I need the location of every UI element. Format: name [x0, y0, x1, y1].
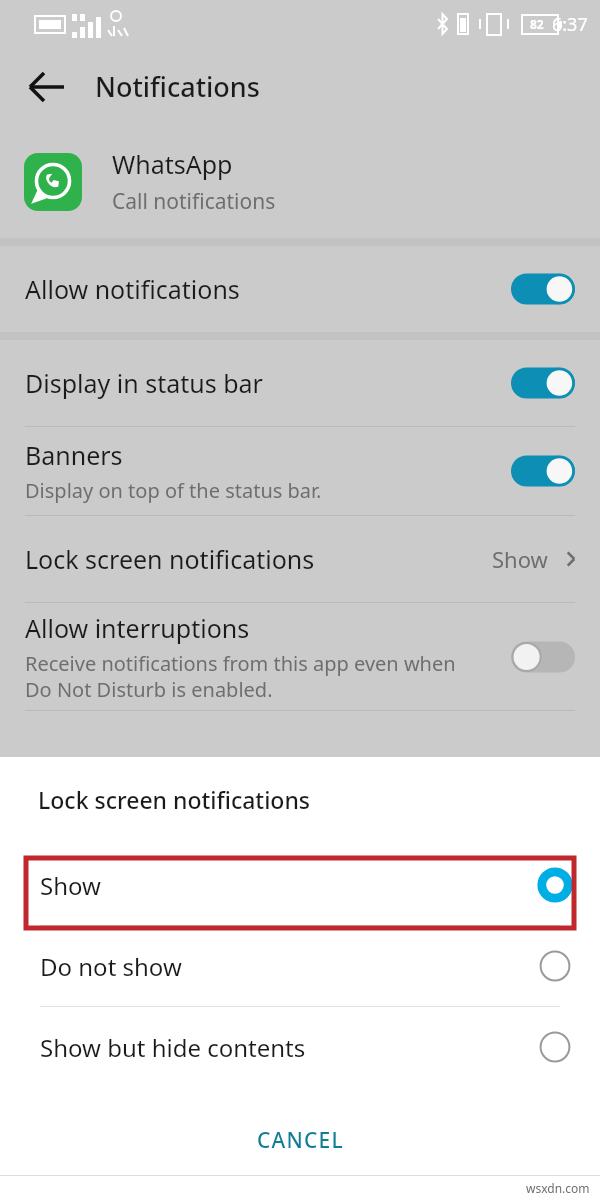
- staticText: WhatsApp: [112, 147, 233, 181]
- button[interactable]: On: [511, 451, 575, 491]
- button[interactable]: CANCEL: [0, 1105, 600, 1175]
- staticText: Receive notifications from this app even…: [25, 650, 456, 703]
- button[interactable]: On: [511, 269, 575, 309]
- button[interactable]: On: [511, 363, 575, 403]
- button[interactable]: WhatsApp: [0, 125, 600, 238]
- staticText: Call notifications: [112, 187, 276, 216]
- staticText: 6:37: [552, 12, 588, 37]
- button[interactable]: Back: [20, 59, 76, 115]
- button[interactable]: Allow notifications: [0, 246, 600, 332]
- staticText: Allow interruptions: [25, 611, 250, 645]
- staticText: Banners: [25, 438, 123, 472]
- staticText: Lock screen notifications: [25, 542, 492, 576]
- staticText: Show but hide contents: [40, 1031, 535, 1064]
- staticText: CANCEL: [257, 1126, 344, 1155]
- staticText: Allow notifications: [25, 272, 511, 306]
- staticText: Show: [40, 869, 535, 902]
- button[interactable]: Do not show: [0, 926, 600, 1006]
- button[interactable]: Banners: [0, 427, 600, 515]
- staticText: Display on top of the status bar.: [25, 477, 322, 504]
- staticText: 82: [530, 16, 544, 32]
- button[interactable]: Off: [511, 637, 575, 677]
- staticText: Lock screen notifications: [38, 784, 311, 815]
- button[interactable]: Allow interruptions: [0, 603, 600, 710]
- button[interactable]: Show but hide contents: [0, 1007, 600, 1087]
- staticText: Display in status bar: [25, 366, 511, 400]
- button[interactable]: Lock screen notifications: [0, 516, 600, 602]
- button[interactable]: Display in status bar: [0, 340, 600, 426]
- staticText: wsxdn.com: [526, 1180, 590, 1196]
- staticText: Show: [492, 544, 548, 574]
- staticText: Notifications: [95, 68, 260, 105]
- button[interactable]: Show: [0, 845, 600, 925]
- staticText: Do not show: [40, 950, 535, 983]
